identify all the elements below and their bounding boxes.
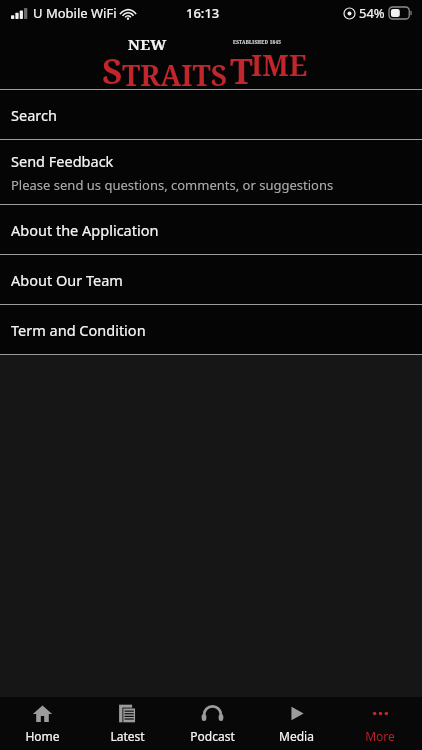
button[interactable]: Send Feedback bbox=[0, 140, 422, 204]
button[interactable]: Media bbox=[254, 697, 338, 750]
staticText: 16:13 bbox=[186, 4, 220, 22]
staticText: ESTABLISHED 1845 bbox=[233, 39, 282, 45]
staticText: Send Feedback bbox=[11, 151, 114, 171]
button[interactable]: More bbox=[338, 697, 422, 750]
staticText: Home bbox=[25, 728, 60, 744]
staticText: S bbox=[102, 47, 123, 95]
staticText: About the Application bbox=[11, 220, 159, 240]
staticText: TRAITS bbox=[122, 56, 228, 94]
staticText: Term and Condition bbox=[11, 320, 146, 340]
button[interactable]: Term and Condition bbox=[0, 305, 422, 354]
button[interactable]: Latest bbox=[85, 697, 170, 750]
button[interactable]: Search bbox=[0, 90, 422, 139]
staticText: About Our Team bbox=[11, 270, 123, 290]
staticText: U Mobile WiFi bbox=[33, 4, 117, 22]
staticText: IMES bbox=[251, 46, 319, 94]
button[interactable]: About the Application bbox=[0, 205, 422, 254]
staticText: Podcast bbox=[190, 728, 235, 744]
staticText: 54% bbox=[359, 4, 385, 22]
button[interactable]: About Our Team bbox=[0, 255, 422, 304]
staticText: NEW bbox=[128, 34, 167, 54]
staticText: Search bbox=[11, 105, 57, 125]
staticText: Please send us questions, comments, or s… bbox=[11, 176, 334, 194]
staticText: More bbox=[365, 728, 395, 744]
staticText: Latest bbox=[110, 728, 145, 744]
button[interactable]: Home bbox=[0, 697, 85, 750]
staticText: Media bbox=[279, 728, 314, 744]
button[interactable]: Podcast bbox=[170, 697, 254, 750]
staticText: T bbox=[230, 47, 253, 95]
